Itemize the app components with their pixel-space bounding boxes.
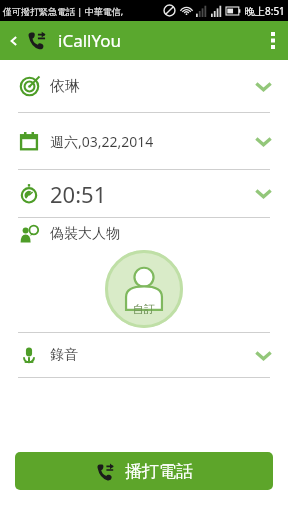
- button[interactable]: 20:51: [0, 170, 288, 217]
- button[interactable]: 錄音: [0, 333, 288, 377]
- button[interactable]: More options: [258, 21, 288, 60]
- button[interactable]: 依琳: [0, 60, 288, 112]
- button[interactable]: 偽裝大人物: [0, 218, 288, 332]
- staticText: 依琳: [50, 77, 80, 96]
- staticText: iCallYou: [58, 29, 122, 52]
- staticText: 僅可撥打緊急電話 | 中華電信,: [3, 5, 124, 17]
- button[interactable]: Custom avatar: [105, 250, 183, 328]
- staticText: 偽裝大人物: [50, 225, 120, 243]
- staticText: 播打電話: [125, 461, 193, 482]
- button[interactable]: 播打電話: [15, 452, 273, 490]
- staticText: 錄音: [50, 346, 78, 364]
- staticText: 週六,03,22,2014: [50, 132, 154, 151]
- staticText: 自訂: [133, 302, 155, 316]
- button[interactable]: 週六,03,22,2014: [0, 113, 288, 169]
- button[interactable]: Back: [0, 21, 52, 60]
- staticText: 20:51: [50, 179, 107, 209]
- staticText: 晚上8:51: [245, 4, 285, 18]
